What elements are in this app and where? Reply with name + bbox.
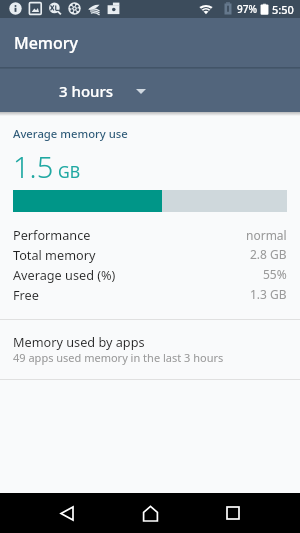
staticText: 3 hours [59, 81, 114, 101]
button[interactable]: Recents [205, 493, 261, 533]
button[interactable]: Home [122, 493, 178, 533]
staticText: 1.5 [13, 147, 54, 186]
staticText: Memory [14, 32, 79, 54]
staticText: 2.8 GB [250, 246, 287, 262]
button[interactable]: Back [39, 493, 95, 533]
staticText: normal [246, 227, 287, 243]
staticText: Performance [13, 226, 91, 243]
button[interactable]: Memory [0, 18, 300, 67]
staticText: 55% [263, 266, 287, 282]
staticText: Memory used by apps [13, 333, 145, 350]
staticText: Average memory use [13, 126, 128, 141]
button[interactable]: Memory used by apps [0, 320, 300, 379]
staticText: 1.3 GB [250, 286, 287, 302]
staticText: Average used (%) [13, 266, 116, 283]
staticText: Total memory [13, 246, 96, 263]
staticText: 5:50 [272, 2, 294, 17]
staticText: 49 apps used memory in the last 3 hours [13, 350, 224, 365]
staticText: 97% [237, 2, 257, 16]
button[interactable]: 3 hours [0, 75, 158, 107]
staticText: GB [58, 161, 81, 183]
staticText: Free [13, 286, 39, 303]
